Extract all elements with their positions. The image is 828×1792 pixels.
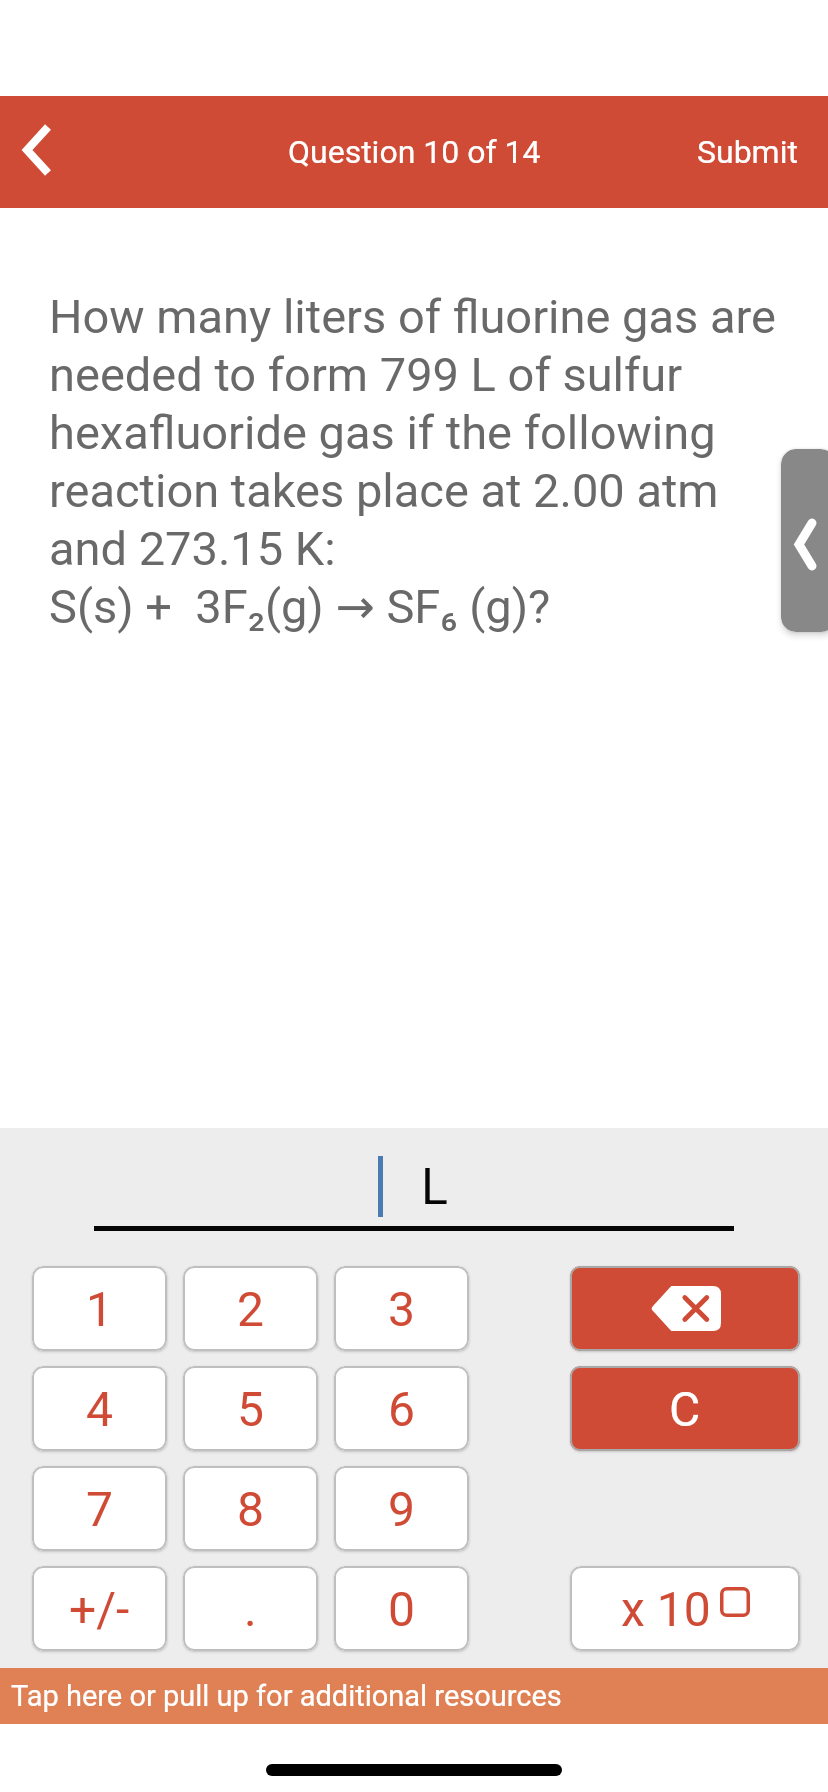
button[interactable]: 8: [183, 1466, 318, 1551]
button[interactable]: Tap here or pull up for additional resou…: [0, 1668, 828, 1724]
button[interactable]: Submit: [667, 109, 828, 195]
button[interactable]: Backspace: [570, 1266, 800, 1351]
staticText: +/-: [69, 1581, 130, 1637]
button[interactable]: 2: [183, 1266, 318, 1351]
button[interactable]: 6: [334, 1366, 469, 1451]
button[interactable]: 1: [32, 1266, 167, 1351]
button[interactable]: 7: [32, 1466, 167, 1551]
staticText: 6: [388, 1381, 415, 1437]
button[interactable]: 9: [334, 1466, 469, 1551]
staticText: L: [421, 1158, 448, 1217]
staticText: How many liters of fluorine gas are need…: [49, 289, 779, 635]
staticText: .: [244, 1581, 257, 1637]
staticText: 4: [86, 1381, 113, 1437]
staticText: 0: [388, 1581, 415, 1637]
staticText: Submit: [697, 133, 798, 171]
button[interactable]: x 10: [570, 1566, 800, 1651]
staticText: 9: [388, 1481, 415, 1537]
staticText: Tap here or pull up for additional resou…: [11, 1679, 562, 1713]
button[interactable]: 0: [334, 1566, 469, 1651]
button[interactable]: 3: [334, 1266, 469, 1351]
staticText: 2: [237, 1281, 264, 1337]
staticText: 5: [237, 1381, 264, 1437]
staticText: Question 10 of 14: [288, 133, 541, 171]
button[interactable]: +/-: [32, 1566, 167, 1651]
staticText: 7: [86, 1481, 113, 1537]
button[interactable]: Clear: [570, 1366, 800, 1451]
staticText: 8: [237, 1481, 264, 1537]
staticText: C: [669, 1381, 701, 1437]
button[interactable]: Back: [0, 116, 72, 188]
button[interactable]: 5: [183, 1366, 318, 1451]
staticText: x 10: [621, 1581, 711, 1637]
staticText: 1: [86, 1281, 113, 1337]
button[interactable]: Open resources panel: [781, 449, 828, 632]
button[interactable]: 4: [32, 1366, 167, 1451]
button[interactable]: .: [183, 1566, 318, 1651]
staticText: 3: [388, 1281, 415, 1337]
